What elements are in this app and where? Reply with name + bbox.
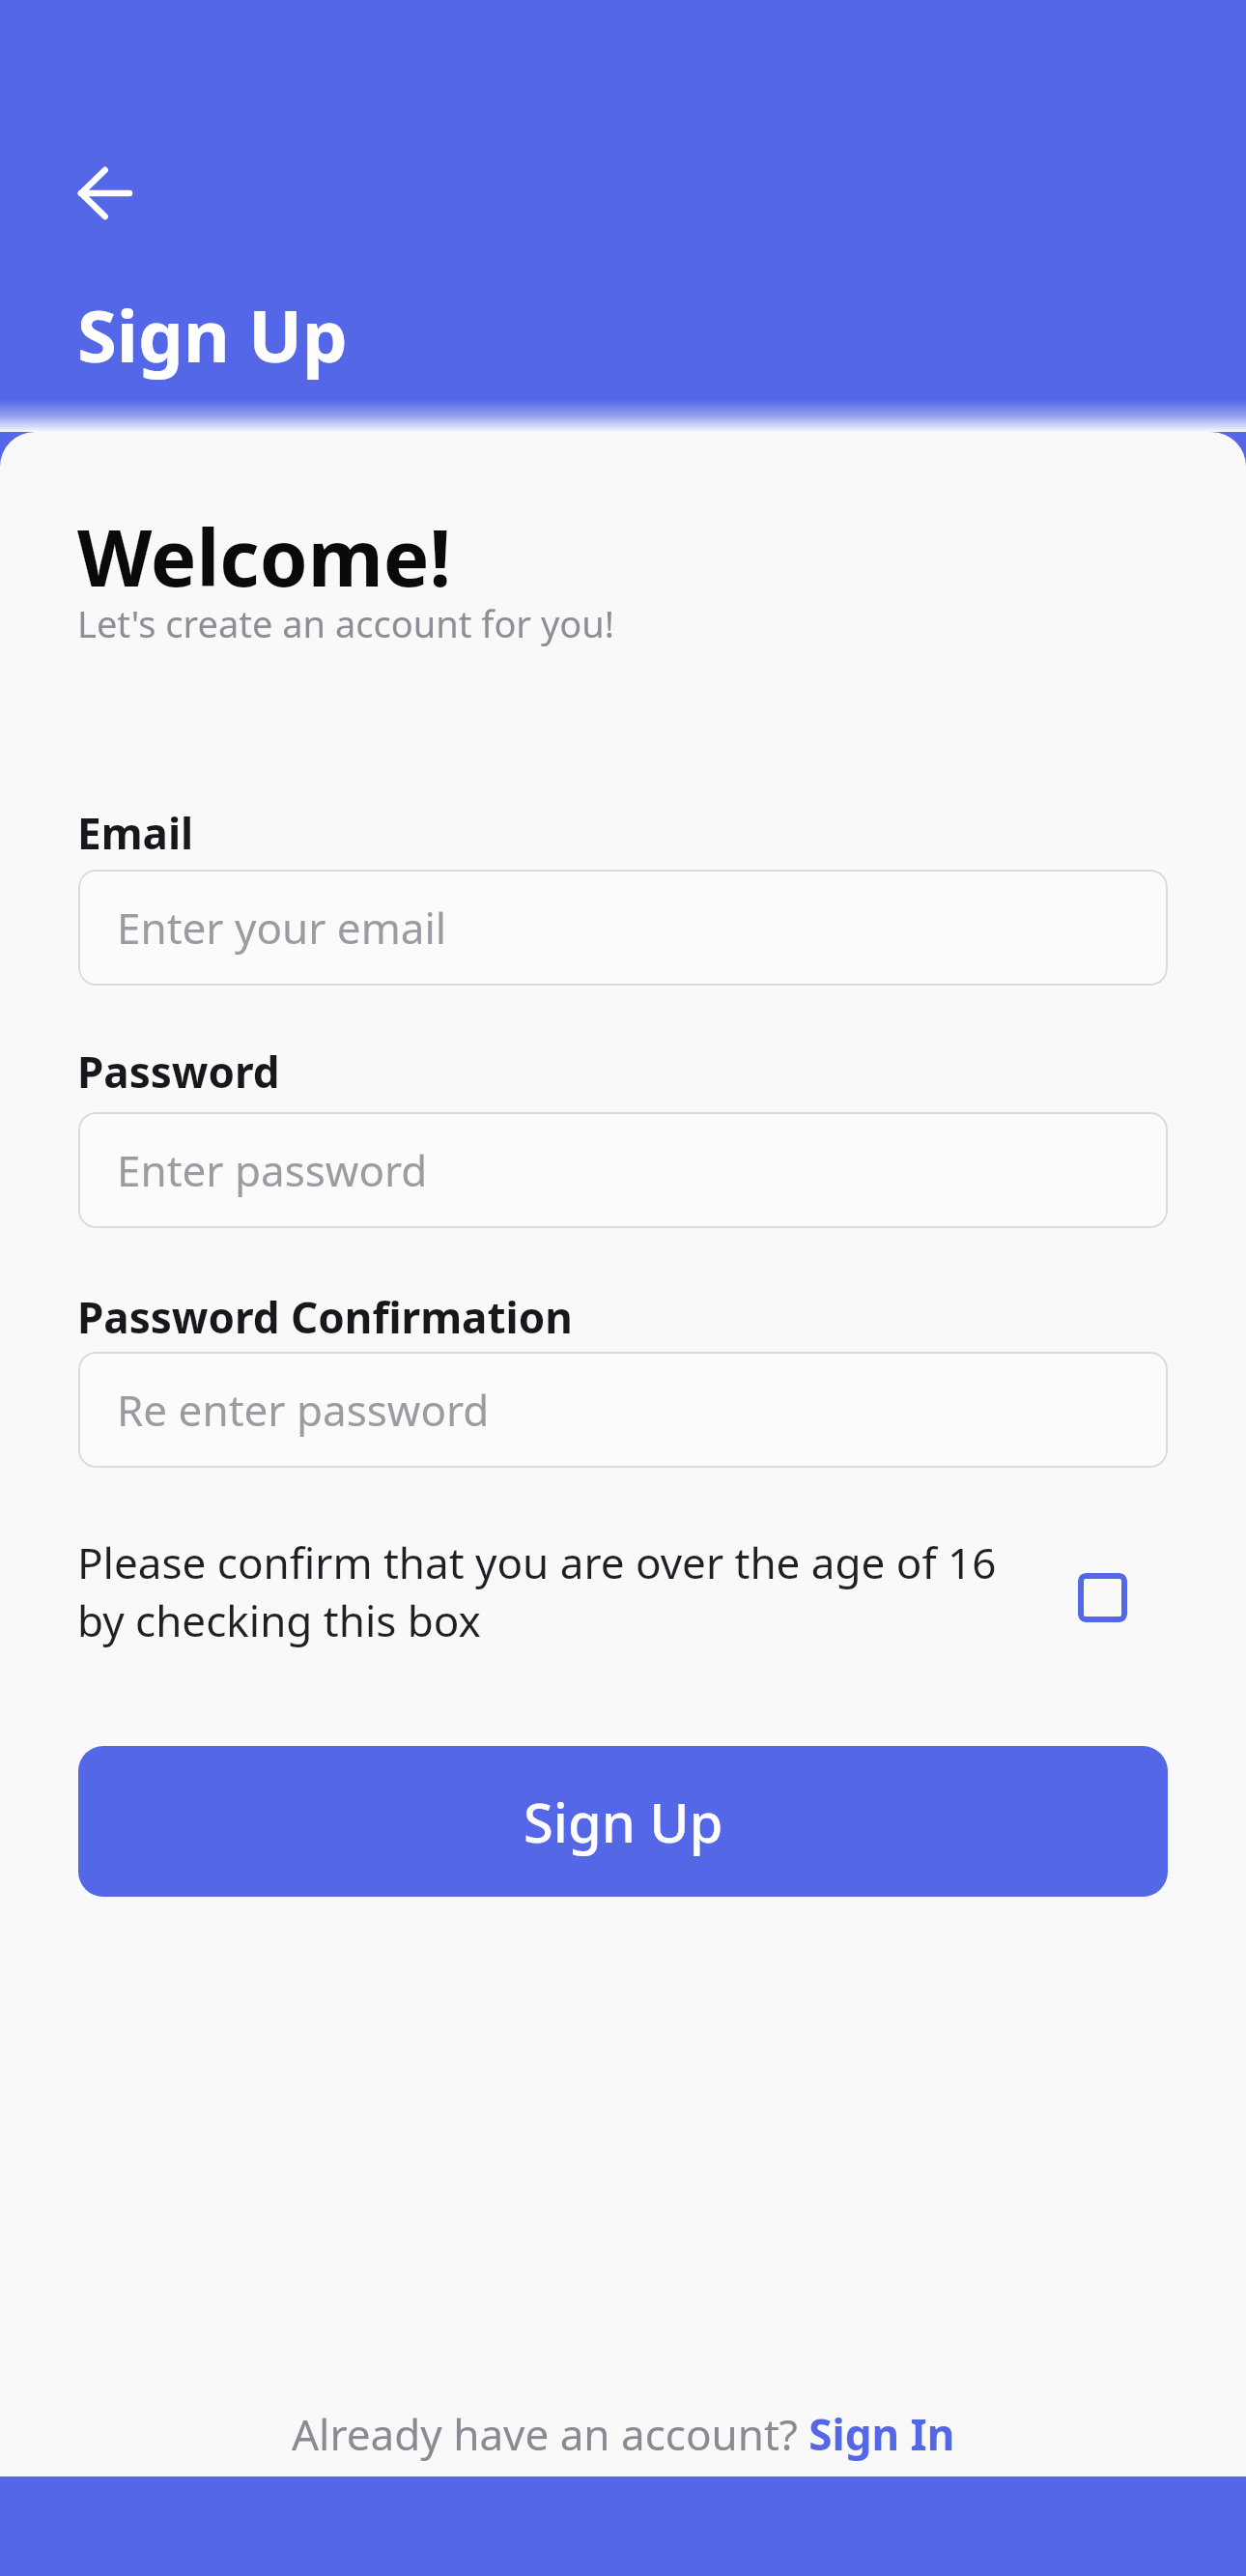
staticText: Please confirm that you are over the age… xyxy=(77,1533,997,1649)
button[interactable]: Already have an account? Sign In xyxy=(292,2405,955,2463)
staticText: Enter password xyxy=(117,1141,428,1199)
staticText: Re enter password xyxy=(117,1381,490,1439)
staticText: Email xyxy=(77,804,194,862)
staticText: Enter your email xyxy=(117,899,447,957)
staticText: Password xyxy=(77,1043,280,1101)
button[interactable] xyxy=(1078,1573,1127,1622)
button[interactable] xyxy=(79,168,129,218)
button[interactable]: Sign Up xyxy=(78,1746,1168,1897)
staticText: Already have an account? Sign In xyxy=(292,2405,955,2463)
button[interactable]: Re enter password xyxy=(78,1352,1168,1468)
staticText: Welcome! xyxy=(77,503,451,609)
button[interactable]: Enter password xyxy=(78,1112,1168,1228)
staticText: Password Confirmation xyxy=(77,1288,573,1346)
staticText: Sign Up xyxy=(524,1785,723,1858)
staticText: Let's create an account for you! xyxy=(77,598,615,648)
button[interactable]: Enter your email xyxy=(78,870,1168,986)
staticText: Sign Up xyxy=(77,286,348,384)
